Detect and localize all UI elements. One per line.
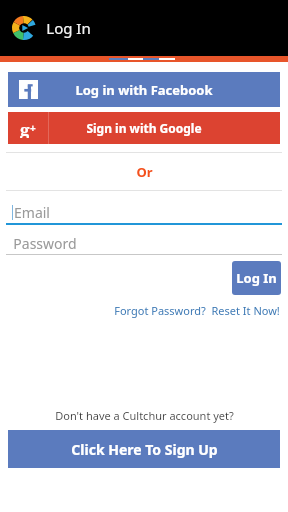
staticText: g — [20, 118, 30, 138]
button[interactable]: Log In — [232, 261, 281, 295]
staticText: Click Here To Sign Up — [71, 440, 218, 459]
other: Facebook — [19, 80, 38, 99]
staticText: Or — [136, 163, 153, 181]
button[interactable]: Facebook — [8, 72, 280, 107]
staticText: Log in with Facebook — [75, 81, 213, 99]
staticText: + — [30, 121, 36, 135]
button[interactable]: Forgot Password? Reset It Now! — [112, 301, 282, 320]
staticText: Don't have a Cultchur account yet? — [55, 408, 234, 423]
button[interactable]: Password — [6, 233, 282, 255]
other: Cultchur logo — [12, 16, 36, 40]
button[interactable]: Email — [6, 201, 282, 225]
staticText: Log In — [236, 269, 277, 287]
staticText: Password — [13, 234, 77, 253]
other: Google — [18, 118, 38, 138]
button[interactable]: Click Here To Sign Up — [8, 430, 280, 468]
staticText: Sign in with Google — [86, 120, 202, 136]
staticText: Forgot Password? Reset It Now! — [114, 303, 280, 318]
staticText: Log In — [46, 18, 91, 38]
staticText: Email — [14, 203, 50, 222]
button[interactable]: Google — [8, 112, 280, 144]
